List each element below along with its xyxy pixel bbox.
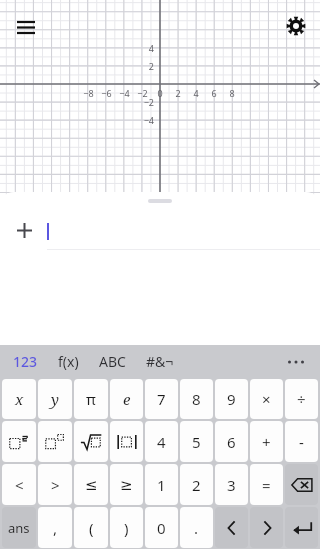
staticText: 4 <box>193 87 199 99</box>
staticText: 8 <box>229 87 235 99</box>
staticText: ( <box>89 518 94 538</box>
button[interactable]: 2 <box>180 464 213 505</box>
button[interactable]: Add expression <box>8 214 40 246</box>
staticText: 4 <box>148 42 154 54</box>
staticText: −8 <box>83 87 94 99</box>
staticText: −4 <box>143 114 154 126</box>
staticText: + <box>262 432 271 452</box>
button[interactable] <box>47 214 320 249</box>
button[interactable]: 1 <box>145 464 178 505</box>
staticText: . <box>194 518 199 538</box>
button[interactable]: × <box>250 379 283 419</box>
button[interactable]: 5 <box>180 421 213 462</box>
button[interactable]: ans <box>2 507 36 548</box>
button[interactable]: ≥ <box>110 464 143 505</box>
staticText: - <box>299 432 304 452</box>
button[interactable]: 0 <box>145 507 178 548</box>
staticText: ≥ <box>120 476 133 493</box>
button[interactable]: Move right <box>250 507 283 548</box>
button[interactable]: 8 <box>180 379 213 419</box>
staticText: ≤ <box>85 476 98 493</box>
staticText: × <box>262 389 271 409</box>
button[interactable]: Power <box>38 421 72 462</box>
staticText: > <box>51 475 60 495</box>
button[interactable]: ( <box>74 507 108 548</box>
button[interactable]: - <box>285 421 318 462</box>
staticText: 6 <box>211 87 217 99</box>
button[interactable]: 9 <box>215 379 248 419</box>
button[interactable]: x <box>2 379 36 419</box>
staticText: ÷ <box>297 389 306 409</box>
button[interactable]: 3 <box>215 464 248 505</box>
staticText: −4 <box>119 87 130 99</box>
button[interactable]: e <box>110 379 143 419</box>
staticText: −6 <box>101 87 112 99</box>
staticText: e <box>123 389 131 409</box>
button[interactable]: #&¬ <box>143 349 177 374</box>
staticText: 5 <box>192 432 201 452</box>
button[interactable]: Absolute value <box>110 421 143 462</box>
button[interactable]: y <box>38 379 72 419</box>
staticText: 1 <box>157 475 166 495</box>
staticText: 3 <box>227 475 236 495</box>
button[interactable]: ABC <box>96 349 129 374</box>
staticText: 0 <box>157 518 166 538</box>
button[interactable]: More <box>282 348 310 376</box>
staticText: ) <box>124 518 129 538</box>
button[interactable]: ) <box>110 507 143 548</box>
staticText: #&¬ <box>146 352 174 371</box>
staticText: π <box>86 389 96 409</box>
staticText: 0 <box>157 87 163 99</box>
button[interactable]: Settings <box>280 10 312 42</box>
button[interactable]: < <box>2 464 36 505</box>
staticText: 7 <box>157 389 166 409</box>
staticText: −2 <box>137 87 148 99</box>
button[interactable]: Menu <box>10 10 42 42</box>
staticText: ans <box>8 519 30 537</box>
staticText: 8 <box>192 389 201 409</box>
button[interactable]: π <box>74 379 108 419</box>
staticText: y <box>51 389 59 409</box>
button[interactable]: Backspace <box>285 464 318 505</box>
staticText: , <box>53 518 58 538</box>
button[interactable]: ÷ <box>285 379 318 419</box>
staticText: 6 <box>227 432 236 452</box>
staticText: 2 <box>192 475 201 495</box>
button[interactable]: Enter <box>285 507 318 548</box>
staticText: ABC <box>99 352 126 371</box>
button[interactable]: Square <box>2 421 36 462</box>
staticText: = <box>262 475 271 495</box>
staticText: f(x) <box>58 352 79 371</box>
button[interactable]: 4 <box>145 421 178 462</box>
button[interactable]: + <box>250 421 283 462</box>
staticText: 9 <box>227 389 236 409</box>
button[interactable]: Move left <box>215 507 248 548</box>
staticText: x <box>15 389 24 409</box>
staticText: −2 <box>143 96 154 108</box>
staticText: 123 <box>13 352 38 371</box>
button[interactable]: = <box>250 464 283 505</box>
button[interactable]: , <box>38 507 72 548</box>
staticText: < <box>15 475 24 495</box>
button[interactable]: f(x) <box>55 349 82 374</box>
button[interactable]: ≤ <box>74 464 108 505</box>
staticText: 4 <box>157 432 166 452</box>
button[interactable]: 7 <box>145 379 178 419</box>
button[interactable]: 6 <box>215 421 248 462</box>
staticText: 2 <box>175 87 181 99</box>
staticText: 2 <box>148 60 154 72</box>
button[interactable]: 123 <box>10 349 41 374</box>
button[interactable]: Square root <box>74 421 108 462</box>
button[interactable]: > <box>38 464 72 505</box>
button[interactable]: . <box>180 507 213 548</box>
